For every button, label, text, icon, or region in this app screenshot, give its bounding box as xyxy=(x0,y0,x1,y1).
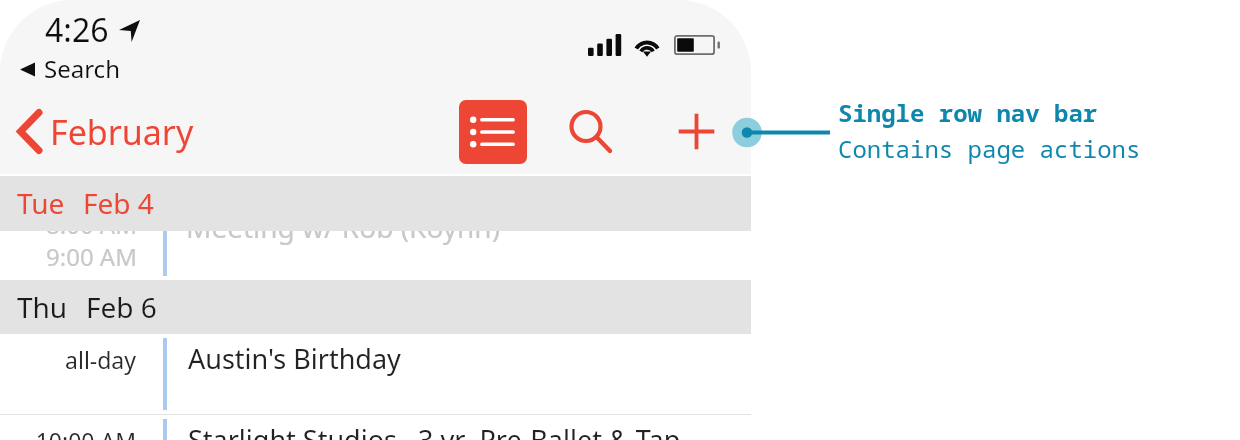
button[interactable]: Search xyxy=(20,52,120,85)
staticText: Thu xyxy=(17,288,68,326)
staticText: Feb 6 xyxy=(86,288,157,326)
staticText: 8:00 AM xyxy=(46,208,137,241)
staticText: 4:26 xyxy=(45,8,109,52)
staticText: February xyxy=(50,109,194,155)
staticText: Search xyxy=(44,52,120,85)
staticText: Feb 4 xyxy=(83,184,154,222)
staticText: Single row nav bar xyxy=(838,96,1098,129)
staticText: Contains page actions xyxy=(838,132,1141,165)
staticText: Austin's Birthday xyxy=(188,340,401,377)
button[interactable]: Thu xyxy=(0,281,751,334)
staticText: 9:00 AM xyxy=(46,240,137,273)
button[interactable]: Add event xyxy=(669,104,725,160)
staticText: Meeting w/ Rob (Koynn) xyxy=(186,208,501,246)
staticText: Starlight Studios 3 yr Pre-Ballet & Tap xyxy=(188,421,681,440)
button[interactable]: 10:00 AM xyxy=(0,415,751,440)
staticText: all-day xyxy=(65,344,136,375)
staticText: Tue xyxy=(17,184,65,222)
button[interactable]: Tue xyxy=(0,176,751,231)
button[interactable]: all-day xyxy=(0,334,751,415)
button[interactable]: Search xyxy=(558,100,616,160)
button[interactable]: List view xyxy=(459,100,527,164)
staticText: 10:00 AM xyxy=(35,425,136,440)
button[interactable]: February xyxy=(9,103,204,159)
